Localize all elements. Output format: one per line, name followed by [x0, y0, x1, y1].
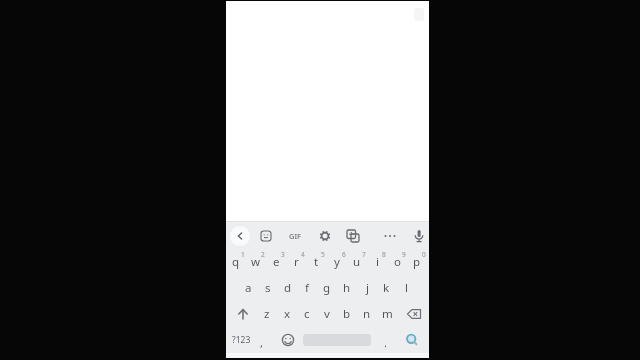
button[interactable]: q — [226, 253, 246, 271]
staticText: 9 — [402, 250, 406, 258]
staticText: p — [413, 254, 421, 270]
staticText: z — [264, 306, 270, 322]
button[interactable] — [344, 227, 362, 245]
staticText: g — [323, 280, 331, 296]
button[interactable] — [233, 304, 253, 324]
button[interactable]: k — [376, 279, 396, 297]
staticText: k — [383, 280, 390, 296]
staticText: ?123 — [232, 334, 251, 346]
button[interactable]: ?123 — [228, 332, 254, 348]
button[interactable] — [380, 228, 400, 244]
button[interactable]: y — [327, 253, 347, 271]
button[interactable]: h — [337, 279, 357, 297]
staticText: u — [353, 254, 361, 270]
button[interactable]: w — [246, 253, 266, 271]
button[interactable]: i — [367, 253, 387, 271]
button[interactable]: n — [357, 305, 377, 323]
staticText: s — [265, 280, 271, 296]
button[interactable]: b — [337, 305, 357, 323]
button[interactable]: g — [317, 279, 337, 297]
button[interactable]: , — [251, 333, 271, 351]
staticText: 0 — [422, 250, 426, 258]
staticText: 5 — [321, 250, 325, 258]
button[interactable]: m — [377, 305, 397, 323]
staticText: x — [284, 306, 291, 322]
button[interactable]: e — [266, 253, 286, 271]
button[interactable]: t — [306, 253, 326, 271]
staticText: f — [305, 280, 309, 296]
staticText: r — [294, 254, 299, 270]
staticText: GIF — [289, 231, 302, 241]
staticText: i — [376, 254, 379, 270]
button[interactable]: l — [396, 279, 416, 297]
staticText: o — [394, 254, 401, 270]
button[interactable]: p — [407, 253, 427, 271]
staticText: a — [245, 280, 252, 296]
button[interactable]: r — [286, 253, 306, 271]
staticText: l — [405, 280, 408, 296]
staticText: 6 — [342, 250, 346, 258]
button[interactable]: c — [297, 305, 317, 323]
button[interactable] — [410, 227, 428, 245]
staticText: d — [284, 280, 292, 296]
staticText: . — [384, 335, 387, 350]
button[interactable]: GIF — [284, 229, 306, 243]
staticText: h — [343, 280, 351, 296]
button[interactable] — [279, 331, 297, 349]
staticText: 1 — [241, 250, 245, 258]
staticText: j — [366, 280, 369, 296]
staticText: v — [324, 306, 330, 322]
staticText: e — [273, 254, 280, 270]
staticText: 3 — [281, 250, 285, 258]
button[interactable] — [316, 227, 334, 245]
staticText: 7 — [362, 250, 366, 258]
button[interactable]: u — [347, 253, 367, 271]
staticText: , — [260, 335, 263, 350]
button[interactable] — [230, 226, 250, 246]
staticText: b — [343, 306, 351, 322]
button[interactable]: a — [238, 279, 258, 297]
button[interactable] — [403, 304, 425, 324]
button[interactable]: f — [297, 279, 317, 297]
button[interactable]: . — [375, 333, 395, 351]
staticText: y — [334, 254, 340, 270]
staticText: 2 — [261, 250, 265, 258]
staticText: 8 — [382, 250, 386, 258]
staticText: n — [363, 306, 371, 322]
button[interactable]: s — [258, 279, 278, 297]
staticText: m — [382, 306, 393, 322]
button[interactable]: j — [357, 279, 377, 297]
staticText: q — [232, 254, 240, 270]
staticText: c — [304, 306, 310, 322]
button[interactable]: z — [257, 305, 277, 323]
button[interactable]: x — [277, 305, 297, 323]
button[interactable] — [257, 227, 275, 245]
button[interactable]: o — [387, 253, 407, 271]
button[interactable]: d — [278, 279, 298, 297]
staticText: 4 — [301, 250, 305, 258]
staticText: w — [251, 254, 261, 270]
button[interactable]: v — [317, 305, 337, 323]
button[interactable] — [402, 330, 422, 350]
staticText: t — [314, 254, 319, 270]
